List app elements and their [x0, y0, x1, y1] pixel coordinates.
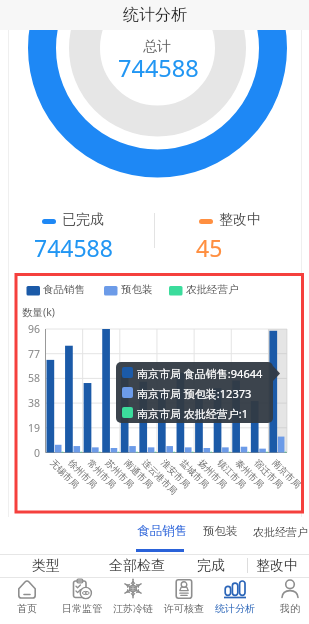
- staticText: 首页: [17, 602, 37, 615]
- staticText: 南京市局 预包装:12373: [137, 386, 252, 401]
- staticText: 77: [28, 347, 41, 361]
- staticText: 徐州市局: [66, 457, 99, 490]
- staticText: 南通市局: [122, 457, 155, 490]
- button[interactable]: [197, 516, 245, 552]
- staticText: 744588: [118, 52, 199, 84]
- staticText: 数量(k): [22, 305, 55, 319]
- button[interactable]: [95, 554, 175, 577]
- staticText: 宿迁市局: [252, 457, 285, 490]
- button[interactable]: [130, 516, 192, 552]
- staticText: 泰州市局: [233, 457, 266, 490]
- staticText: 农批经营户: [186, 283, 239, 296]
- staticText: 744588: [34, 232, 113, 263]
- button[interactable]: [18, 554, 73, 577]
- staticText: 整改中: [256, 557, 298, 575]
- staticText: 连云港市局: [140, 457, 180, 497]
- button[interactable]: 统计分析: [0, 0, 309, 30]
- button[interactable]: 许可核查: [159, 578, 209, 624]
- staticText: 常州市局: [85, 457, 118, 490]
- button[interactable]: [248, 516, 309, 552]
- staticText: 镇江市局: [215, 457, 248, 490]
- staticText: 预包装: [121, 283, 153, 296]
- staticText: 淮安市局: [159, 457, 192, 490]
- staticText: 苏州市局: [103, 457, 136, 490]
- button[interactable]: 统计分析: [210, 578, 260, 624]
- staticText: 19: [28, 421, 41, 435]
- staticText: 完成: [197, 557, 225, 575]
- staticText: 食品销售: [43, 283, 85, 296]
- staticText: 0: [34, 446, 41, 460]
- staticText: 96: [28, 322, 41, 336]
- staticText: 我的: [280, 602, 300, 615]
- staticText: 农批经营户: [253, 525, 308, 539]
- staticText: 38: [28, 396, 41, 410]
- button[interactable]: 江苏冷链: [108, 578, 158, 624]
- button[interactable]: [185, 554, 240, 577]
- staticText: 南京市局 食品销售:94644: [137, 366, 263, 381]
- staticText: 45: [196, 232, 223, 263]
- button[interactable]: 日常监管: [57, 578, 107, 624]
- staticText: 扬州市局: [196, 457, 229, 490]
- staticText: 无锡市局: [48, 457, 81, 490]
- staticText: 许可核查: [164, 602, 204, 615]
- button[interactable]: 我的: [265, 578, 309, 624]
- staticText: 58: [28, 371, 41, 385]
- staticText: 南京市局: [270, 457, 303, 490]
- staticText: 食品销售: [137, 523, 187, 539]
- staticText: 总计: [143, 38, 171, 56]
- staticText: 类型: [32, 557, 60, 575]
- staticText: 已完成: [62, 211, 104, 229]
- staticText: 盐城市局: [178, 457, 211, 490]
- staticText: 江苏冷链: [113, 602, 153, 615]
- staticText: 预包装: [203, 524, 238, 538]
- button[interactable]: [249, 554, 304, 577]
- staticText: 日常监管: [62, 602, 102, 615]
- staticText: 统计分析: [123, 5, 187, 25]
- staticText: 整改中: [219, 211, 261, 229]
- staticText: 统计分析: [215, 602, 255, 615]
- button[interactable]: 首页: [2, 578, 52, 624]
- staticText: 全部检查: [109, 557, 165, 575]
- staticText: 南京市局 农批经营户:1: [137, 406, 249, 421]
